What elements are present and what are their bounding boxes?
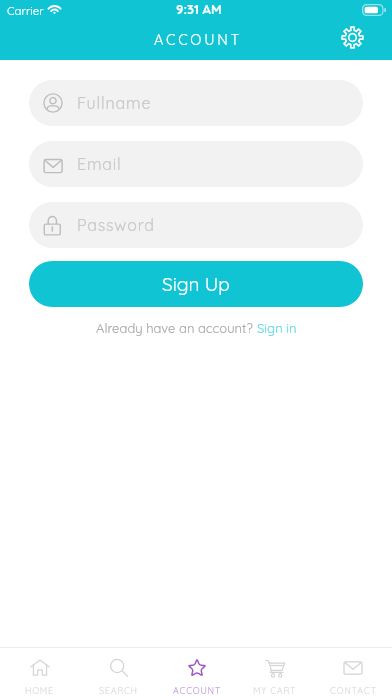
staticText: MY CART <box>253 685 297 696</box>
staticText: Email <box>77 154 122 174</box>
staticText: Password <box>77 215 155 235</box>
staticText: ACCOUNT <box>154 30 242 48</box>
button[interactable]: CONTACT <box>314 648 392 696</box>
staticText: 9:31 AM <box>176 1 222 17</box>
button[interactable]: SEARCH <box>79 648 158 696</box>
button[interactable]: Sign in <box>257 320 297 336</box>
staticText: Already have an account? <box>96 320 257 336</box>
button[interactable]: Password <box>29 202 363 248</box>
button[interactable]: Sign Up <box>29 261 363 307</box>
staticText: Carrier <box>7 3 44 17</box>
staticText: HOME <box>25 685 54 696</box>
button[interactable]: MY CART <box>236 648 314 696</box>
button[interactable]: ACCOUNT <box>158 648 236 696</box>
button[interactable]: Fullname <box>29 80 363 126</box>
button[interactable]: Settings <box>341 26 364 49</box>
staticText: ACCOUNT <box>173 685 222 696</box>
button[interactable]: HOME <box>0 648 79 696</box>
staticText: Sign Up <box>162 272 230 296</box>
staticText: SEARCH <box>99 685 138 696</box>
button[interactable]: Email <box>29 141 363 187</box>
staticText: CONTACT <box>330 685 377 696</box>
staticText: Fullname <box>77 93 152 113</box>
